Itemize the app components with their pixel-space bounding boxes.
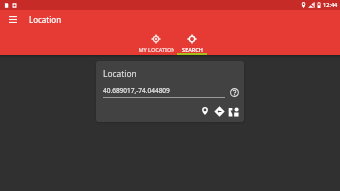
- staticText: Location: [29, 14, 62, 25]
- button[interactable]: Help: [228, 86, 240, 98]
- button[interactable]: Pin location: [198, 104, 212, 118]
- button[interactable]: SEARCH: [174, 31, 210, 55]
- staticText: MY LOCATION: [138, 46, 174, 53]
- button[interactable]: Open navigation drawer: [0, 10, 21, 31]
- staticText: Location: [103, 68, 137, 79]
- staticText: 12:44: [323, 1, 338, 9]
- staticText: SEARCH: [182, 46, 203, 53]
- button[interactable]: Directions: [212, 104, 226, 118]
- staticText: 40.689017,-74.044809: [103, 86, 170, 95]
- button[interactable]: MY LOCATION: [138, 31, 174, 55]
- button[interactable]: Open map: [226, 104, 240, 118]
